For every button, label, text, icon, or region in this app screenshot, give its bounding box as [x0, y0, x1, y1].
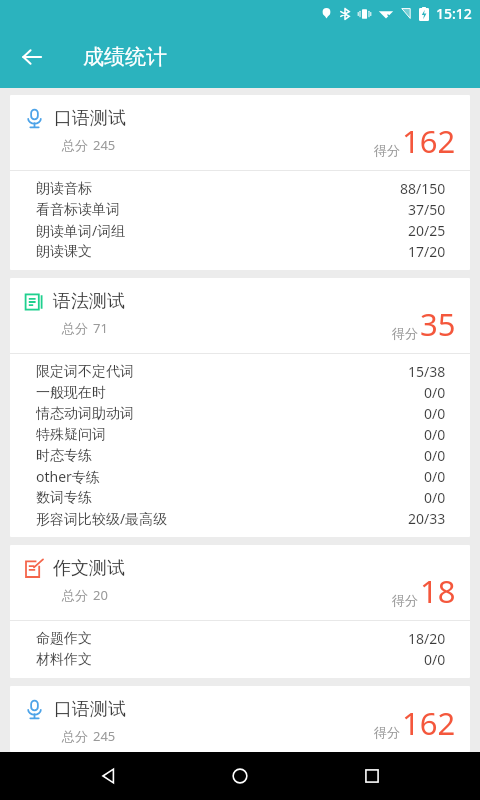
staticText: 20 — [93, 586, 108, 604]
staticText: 245 — [93, 136, 116, 154]
staticText: 20/25 — [408, 221, 446, 240]
button[interactable]: Back — [84, 752, 132, 800]
staticText: 得分 — [374, 724, 400, 740]
staticText: 朗读课文 — [36, 243, 92, 261]
staticText: 时态专练 — [36, 447, 92, 465]
staticText: 18/20 — [408, 629, 446, 648]
button[interactable]: 口语测试 — [10, 95, 470, 270]
staticText: 材料作文 — [36, 651, 92, 669]
staticText: 命题作文 — [36, 630, 92, 648]
staticText: 总分 — [62, 137, 88, 153]
staticText: 0/0 — [424, 488, 446, 507]
staticText: 88/150 — [400, 179, 446, 198]
staticText: 20/33 — [408, 509, 446, 528]
button[interactable]: 口语测试 — [10, 686, 470, 752]
staticText: 口语测试 — [54, 698, 126, 721]
staticText: 形容词比较级/最高级 — [36, 509, 168, 528]
staticText: 得分 — [392, 592, 418, 608]
staticText: 162 — [402, 702, 456, 744]
staticText: 0/0 — [424, 404, 446, 423]
button[interactable]: Home — [216, 752, 264, 800]
staticText: 15/38 — [408, 362, 446, 381]
button[interactable]: 作文测试 — [10, 545, 470, 678]
staticText: 0/0 — [424, 467, 446, 486]
staticText: 245 — [93, 727, 116, 745]
button[interactable]: Recents — [348, 752, 396, 800]
staticText: 17/20 — [408, 242, 446, 261]
button[interactable]: Back — [10, 35, 54, 79]
staticText: 15:12 — [436, 4, 472, 23]
staticText: 得分 — [374, 142, 400, 158]
staticText: 0/0 — [424, 425, 446, 444]
staticText: 朗读音标 — [36, 180, 92, 198]
staticText: 总分 — [62, 320, 88, 336]
staticText: 一般现在时 — [36, 384, 106, 402]
staticText: 0/0 — [424, 383, 446, 402]
staticText: 数词专练 — [36, 489, 92, 507]
staticText: 0/0 — [424, 446, 446, 465]
staticText: 总分 — [62, 587, 88, 603]
staticText: 成绩统计 — [83, 44, 167, 70]
staticText: 情态动词助动词 — [36, 405, 134, 423]
staticText: 语法测试 — [53, 290, 125, 313]
staticText: 18 — [420, 570, 456, 612]
staticText: 71 — [93, 319, 108, 337]
staticText: 得分 — [392, 325, 418, 341]
staticText: 限定词不定代词 — [36, 363, 134, 381]
button[interactable]: 语法测试 — [10, 278, 470, 537]
staticText: 特殊疑问词 — [36, 426, 106, 444]
staticText: 作文测试 — [53, 557, 125, 580]
staticText: 35 — [420, 303, 456, 345]
staticText: 0/0 — [424, 650, 446, 669]
staticText: 看音标读单词 — [36, 201, 120, 219]
staticText: 162 — [402, 120, 456, 162]
staticText: 口语测试 — [54, 107, 126, 130]
staticText: 总分 — [62, 728, 88, 744]
staticText: 朗读单词/词组 — [36, 221, 126, 240]
staticText: other专练 — [36, 467, 100, 486]
staticText: 37/50 — [408, 200, 446, 219]
